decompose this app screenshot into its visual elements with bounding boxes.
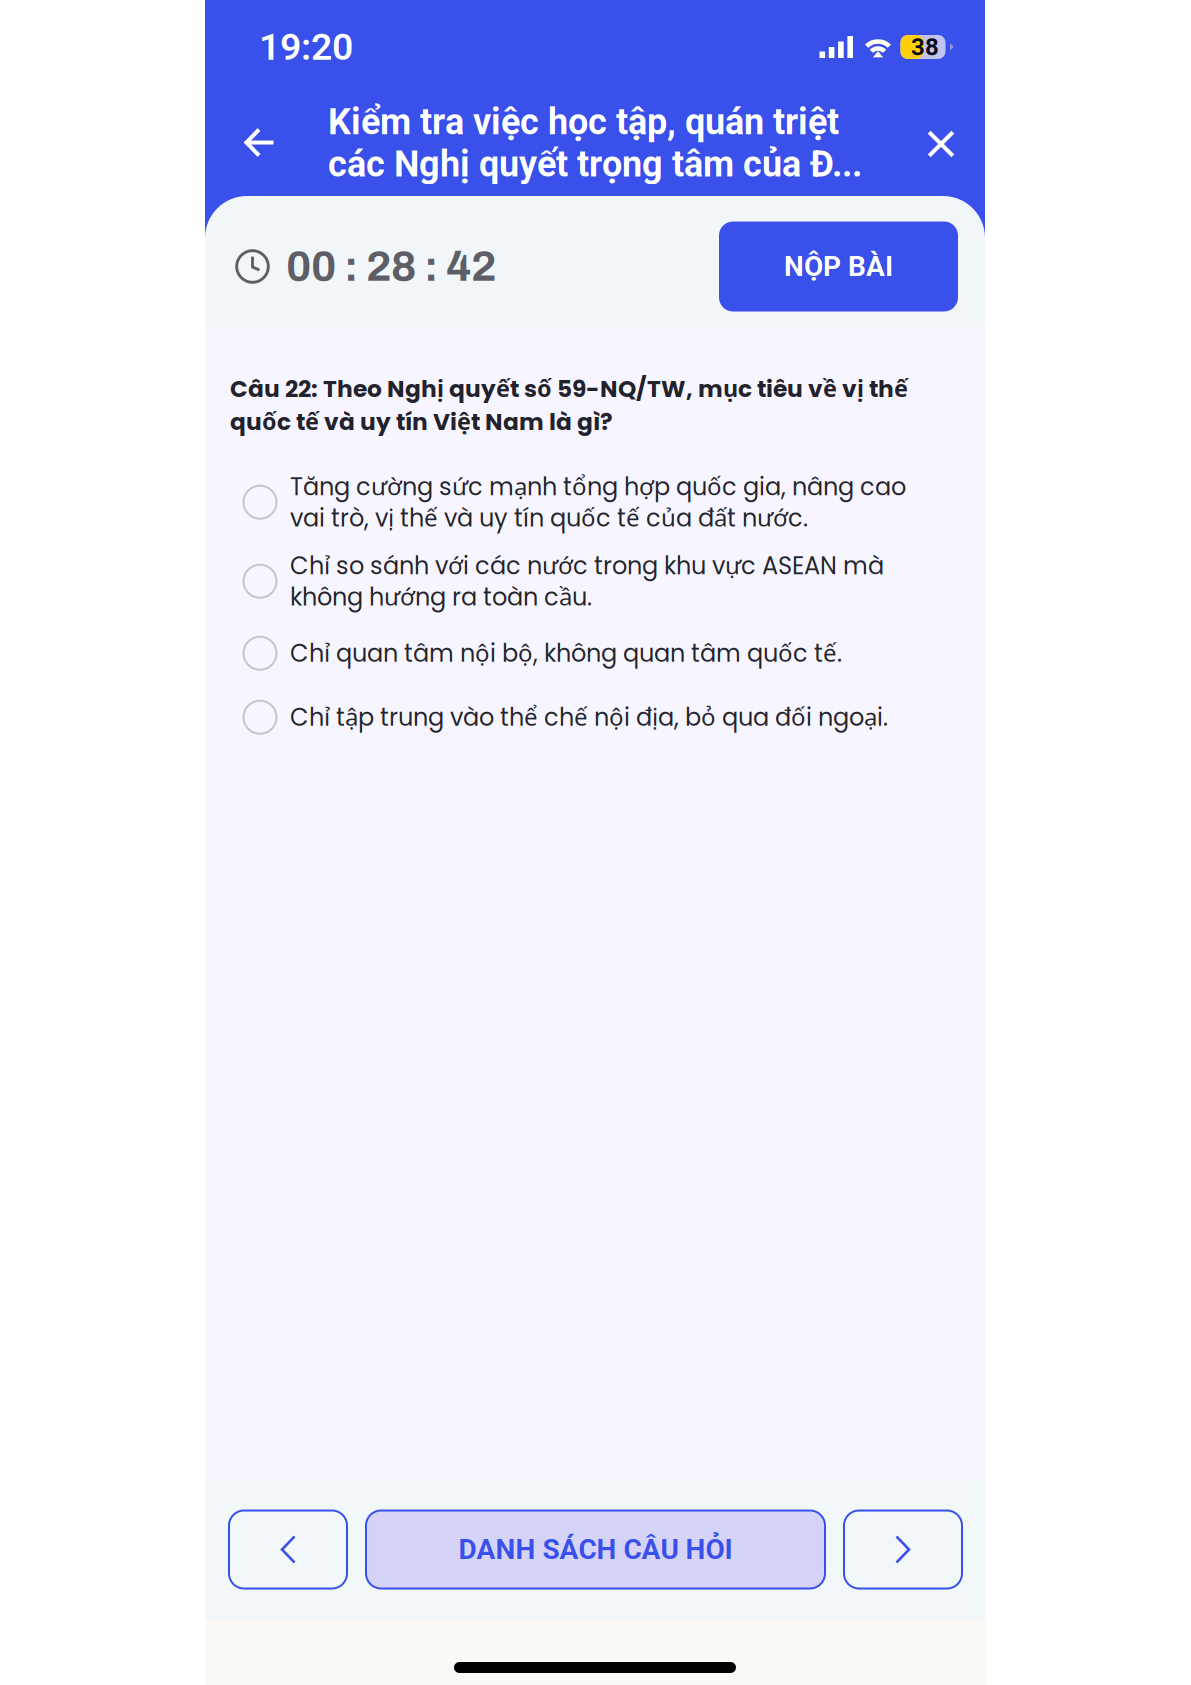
button[interactable]: Close	[205, 90, 985, 196]
button[interactable]: Chỉ so sánh với các nước trong khu vực A…	[230, 542, 937, 620]
button[interactable]: DANH SÁCH CÂU HỎI	[366, 1510, 825, 1588]
button[interactable]: Tăng cường sức mạnh tổng hợp quốc gia, n…	[230, 462, 937, 542]
staticText: Chỉ so sánh với các nước trong khu vực A…	[290, 549, 884, 614]
button[interactable]: Chỉ quan tâm nội bộ, không quan tâm quốc…	[230, 620, 937, 686]
staticText: Chỉ tập trung vào thể chế nội địa, bỏ qu…	[290, 700, 888, 734]
staticText: NỘP BÀI	[784, 250, 893, 283]
button[interactable]: NỘP BÀI	[719, 221, 958, 311]
button[interactable]: Back	[205, 90, 985, 196]
button[interactable]: Next question	[844, 1510, 962, 1588]
staticText: Kiểm tra việc học tập, quán triệt các Ng…	[328, 101, 862, 185]
staticText: 38	[911, 33, 939, 61]
staticText: DANH SÁCH CÂU HỎI	[458, 1533, 732, 1566]
staticText: Chỉ quan tâm nội bộ, không quan tâm quốc…	[290, 636, 842, 670]
button[interactable]: Chỉ tập trung vào thể chế nội địa, bỏ qu…	[230, 686, 937, 748]
staticText: Câu 22: Theo Nghị quyết số 59-NQ/TW, mục…	[230, 372, 908, 438]
staticText: 00 : 28 : 42	[270, 243, 496, 290]
staticText: Tăng cường sức mạnh tổng hợp quốc gia, n…	[290, 470, 906, 535]
staticText: 19:20	[259, 25, 353, 69]
button[interactable]: Previous question	[229, 1510, 347, 1588]
